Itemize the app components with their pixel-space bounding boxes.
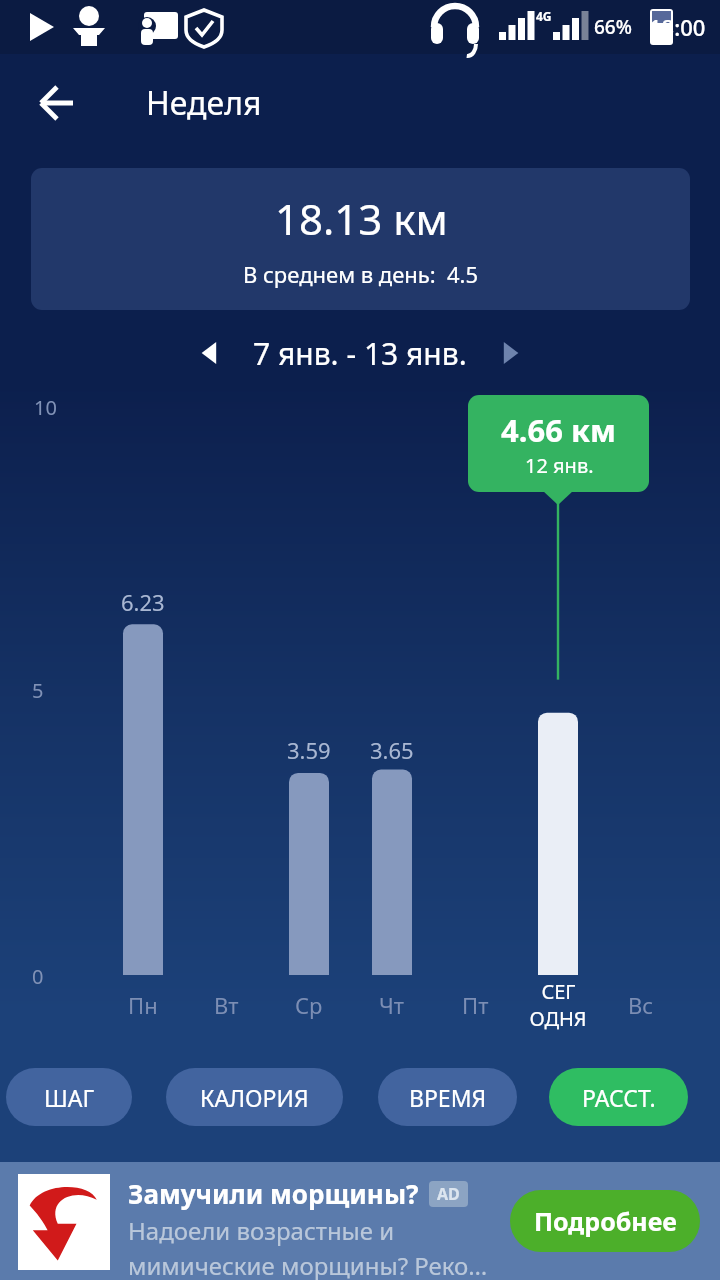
- staticText: РАССТ.: [582, 1082, 656, 1113]
- staticText: СЕГ: [541, 978, 576, 1005]
- button[interactable]: 4.66 км: [468, 395, 649, 492]
- staticText: Замучили морщины?: [128, 1176, 419, 1211]
- button[interactable]: 18.13 км: [31, 168, 690, 310]
- staticText: ШАГ: [44, 1082, 95, 1113]
- staticText: ОДНЯ: [529, 1005, 587, 1032]
- staticText: Пт: [462, 990, 489, 1020]
- button[interactable]: Подробнее: [510, 1190, 700, 1252]
- staticText: Пн: [128, 990, 158, 1020]
- staticText: 10: [34, 394, 57, 421]
- staticText: мимические морщины? Реко…: [128, 1249, 488, 1280]
- staticText: Надоели возрастные и: [128, 1214, 395, 1247]
- staticText: Чт: [379, 990, 405, 1020]
- staticText: 4G: [536, 8, 552, 24]
- staticText: 0: [32, 963, 44, 990]
- staticText: В среднем в день: 4.5: [243, 259, 479, 289]
- staticText: Неделя: [146, 81, 262, 125]
- staticText: Подробнее: [534, 1204, 677, 1238]
- button[interactable]: РАССТ.: [549, 1068, 688, 1126]
- button[interactable]: Next week: [483, 326, 537, 380]
- staticText: 7 янв. - 13 янв.: [253, 333, 467, 374]
- staticText: AD: [437, 1183, 460, 1205]
- staticText: КАЛОРИЯ: [200, 1082, 309, 1113]
- staticText: 6.23: [121, 587, 165, 617]
- button[interactable]: Previous week: [183, 326, 237, 380]
- staticText: Вс: [628, 990, 654, 1020]
- staticText: 12 янв.: [525, 452, 594, 479]
- staticText: 3.65: [370, 735, 414, 765]
- staticText: 18.13 км: [275, 190, 448, 247]
- button[interactable]: ВРЕМЯ: [378, 1068, 517, 1126]
- button[interactable]: Back: [25, 71, 89, 135]
- staticText: ВРЕМЯ: [409, 1082, 487, 1113]
- staticText: 4.66 км: [501, 409, 617, 451]
- staticText: 3.59: [287, 735, 331, 765]
- staticText: 66%: [594, 14, 632, 40]
- staticText: Ср: [295, 990, 323, 1020]
- button[interactable]: КАЛОРИЯ: [166, 1068, 343, 1126]
- button[interactable]: Замучили морщины?: [0, 1162, 720, 1280]
- staticText: 18:00: [649, 12, 706, 42]
- staticText: Вт: [214, 990, 239, 1020]
- staticText: 5: [32, 677, 44, 704]
- button[interactable]: ШАГ: [6, 1068, 132, 1126]
